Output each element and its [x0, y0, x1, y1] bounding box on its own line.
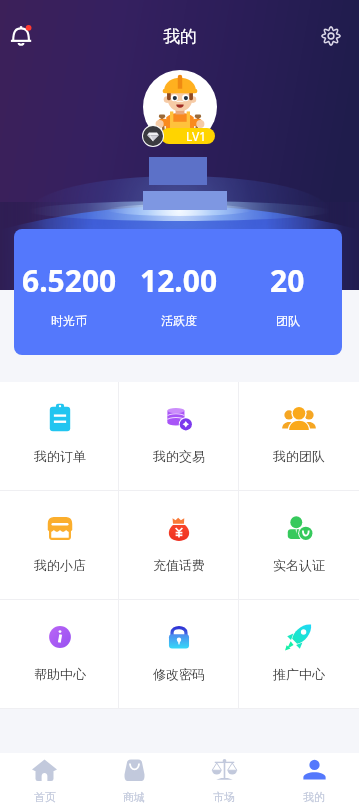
staticText: 时光币	[51, 313, 87, 328]
button[interactable]: 修改密码	[119, 600, 239, 708]
button[interactable]: Avatar	[143, 70, 217, 144]
button[interactable]: Settings	[317, 22, 345, 50]
button[interactable]: 首页	[0, 753, 89, 811]
button[interactable]: 6.5200	[14, 229, 342, 355]
staticText: 20	[270, 260, 305, 301]
staticText: 我的订单	[34, 448, 86, 464]
staticText: 首页	[34, 790, 56, 804]
staticText: 我的小店	[34, 557, 86, 573]
staticText: 活跃度	[161, 313, 197, 328]
button[interactable]: 商城	[89, 753, 179, 811]
staticText: 团队	[276, 313, 300, 328]
staticText: 充值话费	[153, 557, 205, 573]
staticText: 我的	[163, 26, 197, 47]
staticText: 市场	[213, 790, 235, 804]
staticText: 帮助中心	[34, 666, 86, 682]
staticText: 12.00	[140, 260, 218, 301]
button[interactable]: 我的	[269, 753, 359, 811]
button[interactable]: 我的团队	[239, 382, 359, 490]
button[interactable]: 我的小店	[0, 491, 119, 599]
staticText: 修改密码	[153, 666, 205, 682]
button[interactable]: 我的订单	[0, 382, 119, 490]
staticText: 我的交易	[153, 448, 205, 464]
staticText: 我的团队	[273, 448, 325, 464]
staticText: 推广中心	[273, 666, 325, 682]
staticText: LV1	[186, 128, 207, 144]
button[interactable]: 帮助中心	[0, 600, 119, 708]
staticText: 实名认证	[273, 557, 325, 573]
button[interactable]: 推广中心	[239, 600, 359, 708]
staticText: 我的	[303, 790, 325, 804]
staticText: 商城	[123, 790, 145, 804]
staticText: 6.5200	[22, 260, 117, 301]
button[interactable]: 实名认证	[239, 491, 359, 599]
button[interactable]: 我的交易	[119, 382, 239, 490]
button[interactable]: 市场	[179, 753, 269, 811]
button[interactable]: Notifications	[8, 22, 37, 51]
button[interactable]: 充值话费	[119, 491, 239, 599]
